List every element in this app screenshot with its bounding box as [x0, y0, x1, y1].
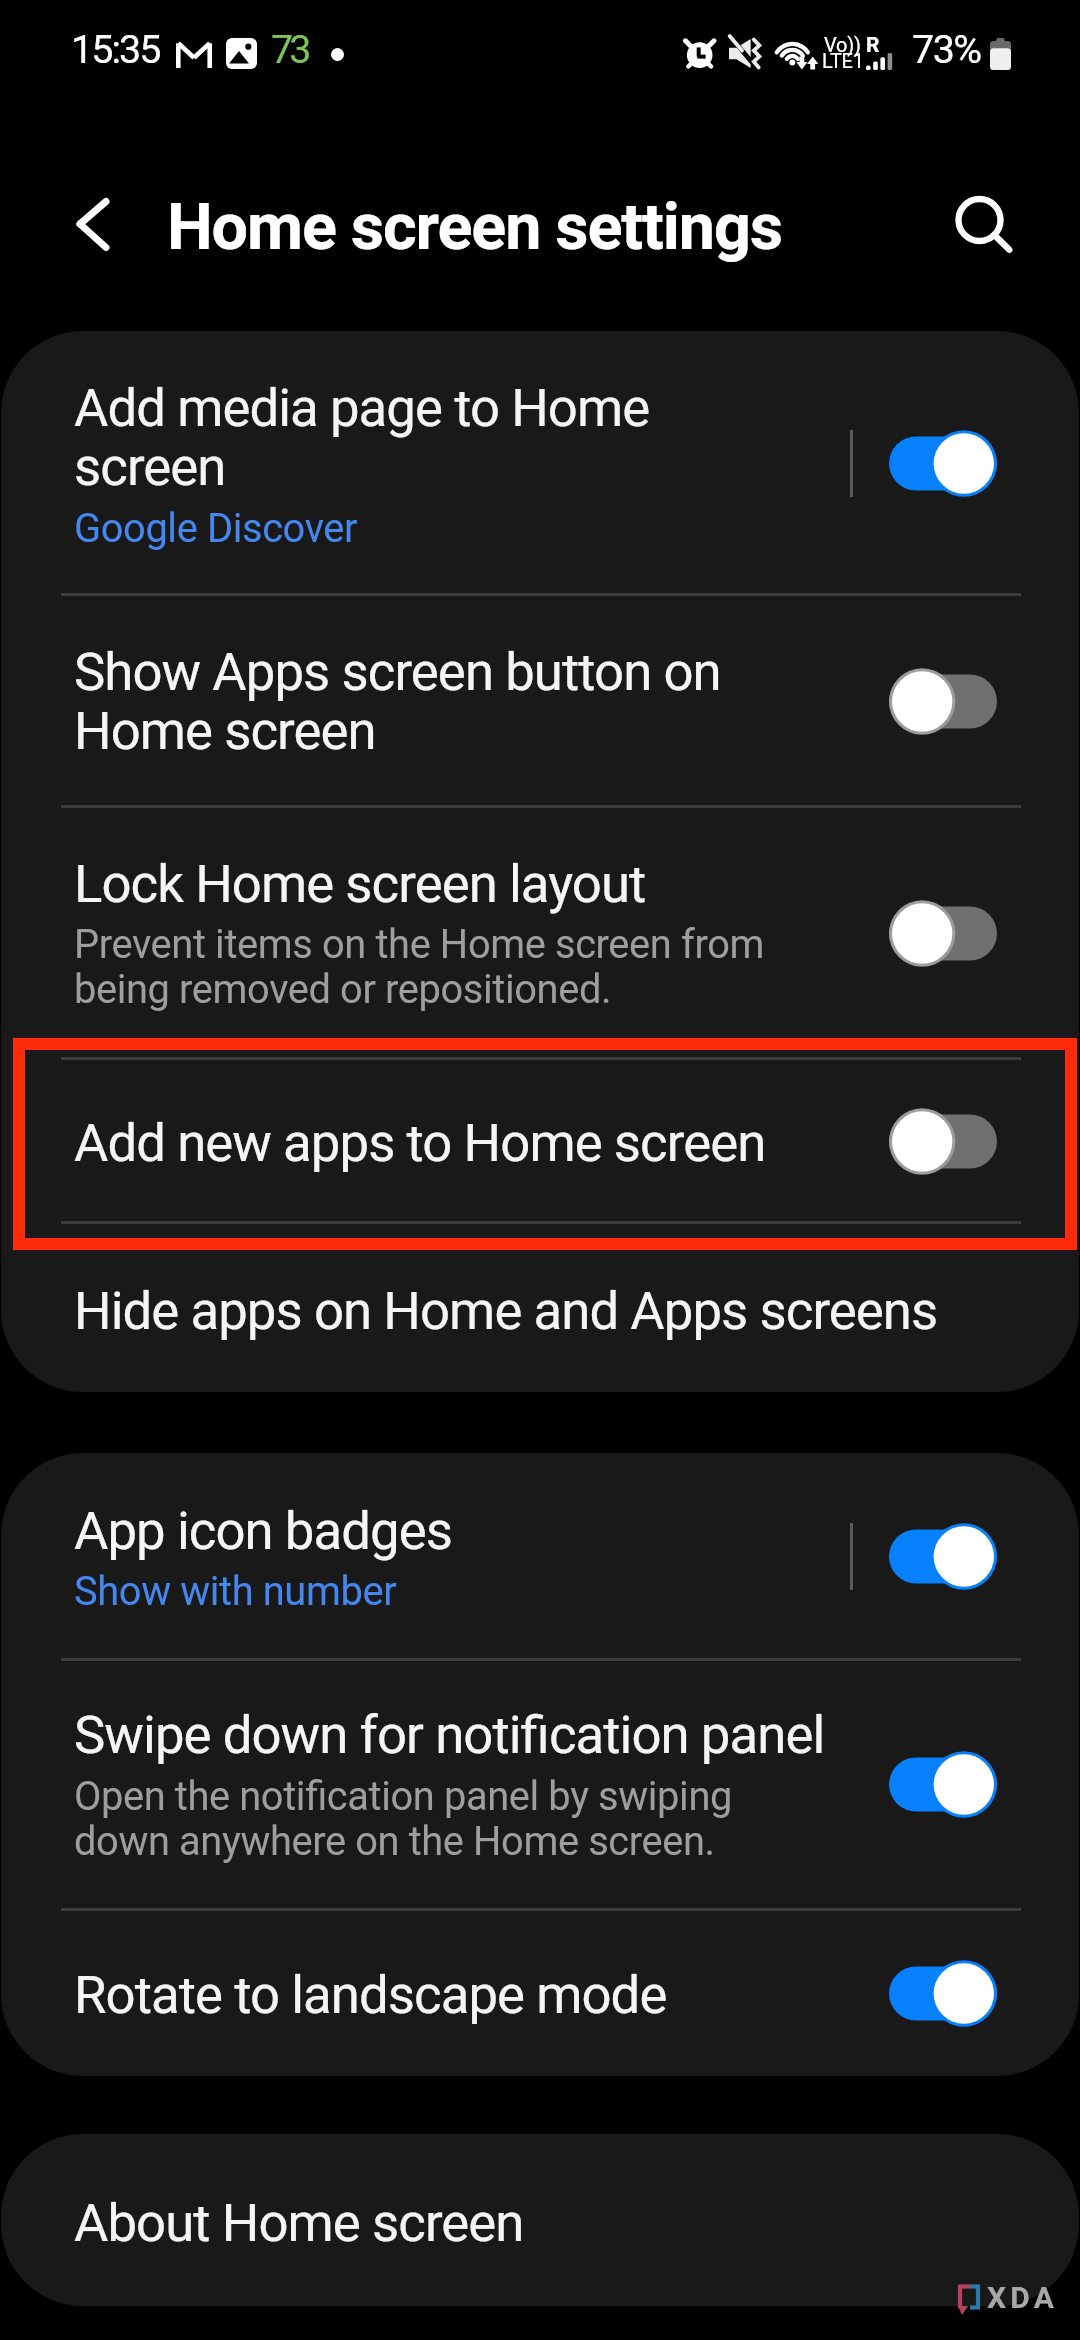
button[interactable]: Enabled [889, 1523, 997, 1590]
button[interactable]: About Home screen [1, 2134, 1079, 2306]
button[interactable]: Add new apps to Home screen [1, 1060, 1079, 1223]
staticText: Home screen settings [167, 189, 782, 265]
staticText: App icon badges [74, 1502, 452, 1561]
staticText: About Home screen [74, 2194, 524, 2253]
staticText: Add media page to Home screen [74, 379, 650, 497]
button[interactable]: Swipe down for notification panel [1, 1660, 1079, 1909]
button[interactable]: Disabled [889, 668, 997, 735]
staticText: XDA [987, 2280, 1059, 2315]
staticText: Show with number [74, 1569, 397, 1614]
button[interactable]: Show Apps screen button on Home screen [1, 596, 1079, 807]
staticText: Vo)) [824, 33, 861, 56]
staticText: Google Discover [74, 506, 358, 551]
staticText: LTE1 [822, 49, 864, 72]
button[interactable]: Lock Home screen layout [1, 808, 1079, 1059]
button[interactable]: Enabled [889, 1751, 997, 1818]
staticText: 15:35 [71, 31, 160, 71]
button[interactable]: Rotate to landscape mode [1, 1910, 1079, 2076]
staticText: 73 [271, 31, 308, 71]
button[interactable]: Hide apps on Home and Apps screens [1, 1224, 1079, 1392]
staticText: Rotate to landscape mode [74, 1966, 667, 2025]
staticText: Hide apps on Home and Apps screens [74, 1282, 938, 1341]
button[interactable]: Disabled [889, 1108, 997, 1175]
staticText: Open the notification panel by swiping d… [74, 1774, 732, 1864]
staticText: Prevent items on the Home screen from be… [74, 922, 764, 1012]
staticText: Swipe down for notification panel [74, 1706, 825, 1765]
staticText: Show Apps screen button on Home screen [74, 643, 721, 761]
staticText: Add new apps to Home screen [74, 1114, 766, 1173]
staticText: 73% [912, 31, 981, 71]
button[interactable]: Search [936, 176, 1032, 272]
staticText: Lock Home screen layout [74, 855, 646, 914]
button[interactable]: Disabled [889, 900, 997, 967]
staticText: R [866, 33, 880, 58]
button[interactable]: Add media page to Home screen [1, 331, 1079, 595]
button[interactable]: Enabled [889, 1960, 997, 2027]
button[interactable]: Navigate up [38, 176, 134, 272]
button[interactable]: App icon badges [1, 1453, 1079, 1659]
button[interactable]: Enabled [889, 430, 997, 497]
